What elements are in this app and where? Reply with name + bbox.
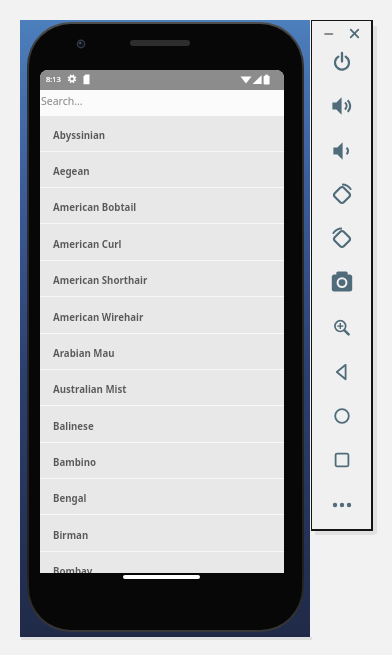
button[interactable]: American Shorthair bbox=[40, 261, 284, 297]
button[interactable]: Birman bbox=[40, 516, 284, 552]
button[interactable]: Search... bbox=[40, 90, 284, 116]
button[interactable]: Bengal bbox=[40, 479, 284, 515]
staticText: Balinese bbox=[53, 420, 94, 433]
button[interactable] bbox=[324, 354, 360, 390]
button[interactable]: Balinese bbox=[40, 407, 284, 443]
button[interactable] bbox=[345, 24, 364, 43]
staticText: 8:13 bbox=[46, 74, 61, 84]
button[interactable]: American Curl bbox=[40, 225, 284, 261]
staticText: American Bobtail bbox=[53, 201, 137, 214]
staticText: Aegean bbox=[53, 165, 90, 178]
button[interactable]: Arabian Mau bbox=[40, 334, 284, 370]
button[interactable]: Aegean bbox=[40, 152, 284, 188]
staticText: Bengal bbox=[53, 492, 87, 505]
button[interactable]: 8:13 bbox=[40, 70, 284, 90]
button[interactable]: Australian Mist bbox=[40, 370, 284, 406]
button[interactable]: Bombay bbox=[40, 552, 284, 573]
button[interactable] bbox=[324, 133, 360, 169]
staticText: American Shorthair bbox=[53, 274, 148, 287]
button[interactable] bbox=[324, 88, 360, 124]
staticText: Bambino bbox=[53, 456, 97, 469]
staticText: Arabian Mau bbox=[53, 347, 115, 360]
button[interactable]: Bambino bbox=[40, 443, 284, 479]
staticText: Bombay bbox=[53, 565, 93, 573]
button[interactable] bbox=[324, 398, 360, 434]
button[interactable] bbox=[324, 487, 360, 523]
staticText: Australian Mist bbox=[53, 383, 127, 396]
button[interactable] bbox=[324, 44, 360, 80]
button[interactable]: Abyssinian bbox=[40, 116, 284, 152]
button[interactable]: American Bobtail bbox=[40, 188, 284, 224]
button[interactable] bbox=[319, 24, 338, 43]
staticText: Search... bbox=[41, 94, 83, 108]
staticText: American Wirehair bbox=[53, 311, 144, 324]
staticText: American Curl bbox=[53, 238, 122, 251]
button[interactable] bbox=[324, 221, 360, 257]
button[interactable] bbox=[324, 177, 360, 213]
staticText: Birman bbox=[53, 529, 89, 542]
button[interactable] bbox=[324, 442, 360, 478]
button[interactable]: American Wirehair bbox=[40, 298, 284, 334]
button[interactable] bbox=[324, 265, 360, 301]
staticText: Abyssinian bbox=[53, 129, 106, 142]
button[interactable] bbox=[324, 310, 360, 346]
